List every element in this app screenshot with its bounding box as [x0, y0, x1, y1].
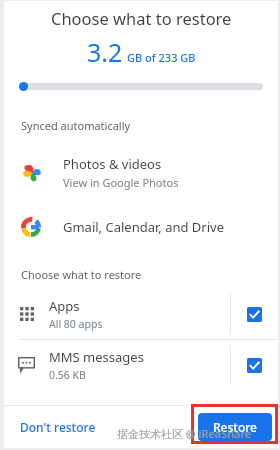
staticText: 3.2	[87, 35, 123, 69]
button[interactable]: Photos & videos	[4, 152, 278, 193]
staticText: Restore	[213, 419, 257, 435]
staticText: Gmail, Calendar, and Drive	[63, 218, 225, 236]
button[interactable]: Don't restore	[4, 413, 106, 441]
staticText: Choose what to restore	[51, 7, 232, 29]
staticText: Choose what to restore	[21, 267, 142, 282]
button[interactable]: Gmail, Calendar, and Drive	[4, 214, 278, 240]
staticText: Don't restore	[20, 419, 96, 435]
staticText: MMS messages	[49, 348, 144, 366]
staticText: All 80 apps	[49, 317, 103, 331]
staticText: View in Google Photos	[63, 175, 179, 190]
button[interactable]: Apps	[4, 289, 278, 339]
staticText: Photos & videos	[63, 155, 162, 173]
staticText: 据金技术社区 @ iReaShare	[117, 426, 252, 441]
staticText: GB of 233 GB	[127, 50, 196, 65]
button[interactable]: Toggle Apps	[231, 289, 278, 339]
button[interactable]: Toggle MMS messages	[231, 340, 278, 390]
staticText: Synced automatically	[21, 118, 131, 133]
button[interactable]: MMS messages	[4, 340, 278, 390]
staticText: Apps	[49, 297, 80, 315]
staticText: 0.56 KB	[49, 368, 86, 382]
button[interactable]: Restore	[198, 413, 272, 441]
